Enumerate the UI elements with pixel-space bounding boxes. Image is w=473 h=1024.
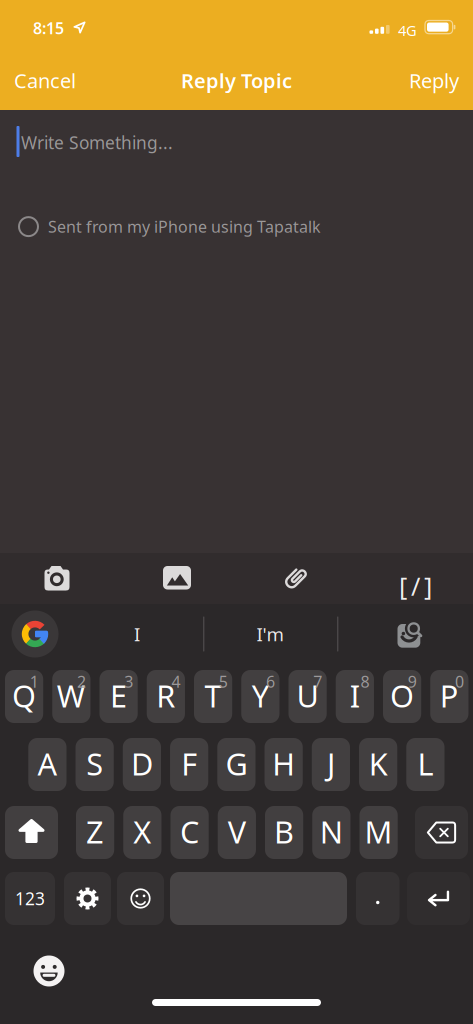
staticText: Write Something... [21, 131, 173, 154]
button[interactable]: T [194, 670, 232, 723]
staticText: A [37, 743, 57, 784]
button[interactable]: P [430, 670, 468, 723]
staticText: 8 [360, 671, 369, 692]
staticText: C [180, 811, 199, 852]
button[interactable]: Period [356, 872, 399, 925]
staticText: H [272, 743, 295, 784]
staticText: 6 [266, 671, 275, 692]
staticText: L [417, 743, 433, 784]
staticText: Cancel [14, 67, 76, 94]
button[interactable]: Reply [409, 67, 473, 94]
button[interactable]: B [265, 806, 303, 859]
button[interactable]: L [406, 738, 444, 791]
staticText: Z [86, 811, 104, 852]
button[interactable]: Cancel [0, 67, 76, 94]
staticText: Sent from my iPhone using Tapatalk [48, 216, 321, 237]
button[interactable]: G [217, 738, 255, 791]
button[interactable]: M [359, 806, 398, 859]
staticText: Reply [409, 67, 459, 94]
button[interactable]: Settings [64, 872, 111, 925]
button[interactable]: Y [241, 670, 279, 723]
staticText: 5 [219, 671, 228, 692]
button[interactable]: E [99, 670, 138, 723]
button[interactable]: A [28, 738, 66, 791]
button[interactable]: O [383, 670, 421, 723]
staticText: 4 [171, 671, 180, 692]
staticText: 0 [455, 671, 464, 692]
staticText: 8:15 [33, 17, 64, 39]
staticText: E [110, 675, 127, 716]
button[interactable]: R [147, 670, 185, 723]
button[interactable]: H [265, 738, 303, 791]
button[interactable]: Attach file [280, 563, 310, 593]
button[interactable]: BBCode [399, 569, 432, 603]
staticText: Y [252, 675, 269, 716]
staticText: T [205, 675, 222, 716]
staticText: S [86, 743, 103, 784]
staticText: 4G [398, 20, 417, 40]
button[interactable]: Delete [415, 806, 468, 859]
button[interactable]: Google search [11, 610, 58, 657]
button[interactable]: Q [5, 670, 43, 723]
button[interactable]: J [312, 738, 350, 791]
staticText: B [274, 811, 294, 852]
button[interactable]: F [170, 738, 208, 791]
staticText: J [327, 743, 335, 784]
button[interactable]: Sent from my iPhone using Tapatalk [0, 110, 303, 131]
staticText: Q [12, 675, 36, 716]
button[interactable]: Image search [397, 620, 423, 648]
button[interactable]: S [75, 738, 114, 791]
staticText: F [181, 743, 197, 784]
staticText: 9 [408, 671, 417, 692]
button[interactable]: Shift [5, 806, 58, 859]
button[interactable]: Emoji [117, 872, 164, 925]
button[interactable]: C [170, 806, 209, 859]
staticText: M [365, 811, 393, 852]
staticText: 123 [15, 887, 45, 910]
staticText: 7 [313, 671, 322, 692]
button[interactable]: I [92, 613, 182, 655]
staticText: R [156, 675, 175, 716]
button[interactable]: W [52, 670, 90, 723]
staticText: K [369, 743, 388, 784]
staticText: I'm [256, 622, 283, 646]
staticText: V [228, 811, 246, 852]
staticText: I [134, 622, 140, 646]
staticText: U [297, 675, 319, 716]
staticText: O [390, 675, 414, 716]
button[interactable]: I'm [225, 613, 315, 655]
staticText: I [350, 675, 360, 716]
button[interactable]: Camera [44, 566, 69, 590]
button[interactable]: I [336, 670, 374, 723]
button[interactable]: N [312, 806, 350, 859]
staticText: 3 [124, 671, 133, 692]
button[interactable]: U [288, 670, 327, 723]
staticText: X [133, 811, 151, 852]
button[interactable]: Return [407, 872, 470, 925]
staticText: 2 [77, 671, 86, 692]
button[interactable]: Emoji [33, 955, 64, 986]
staticText: G [225, 743, 247, 784]
button[interactable]: X [123, 806, 161, 859]
staticText: D [131, 743, 153, 784]
button[interactable]: Photos [163, 566, 191, 589]
staticText: 1 [30, 671, 39, 692]
button[interactable]: Z [76, 806, 114, 859]
button[interactable]: D [123, 738, 161, 791]
button[interactable]: Numbers [5, 872, 55, 925]
staticText: N [320, 811, 343, 852]
staticText: P [440, 675, 459, 716]
staticText: [ / ] [399, 569, 432, 603]
staticText: Reply Topic [181, 67, 292, 94]
button[interactable]: V [218, 806, 256, 859]
button[interactable]: K [359, 738, 397, 791]
staticText: W [57, 675, 86, 716]
